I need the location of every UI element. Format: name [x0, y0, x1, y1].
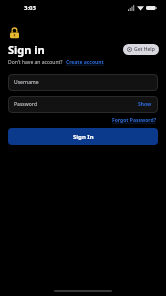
- staticText: Forgot Password?: [112, 117, 157, 124]
- staticText: Sign In: [73, 133, 94, 141]
- button[interactable]: Create account: [66, 59, 104, 66]
- button[interactable]: Show: [138, 101, 152, 108]
- staticText: Create account: [66, 59, 104, 66]
- staticText: Username: [14, 79, 39, 86]
- button[interactable]: Sign In: [8, 128, 158, 145]
- button[interactable]: Forgot Password?: [112, 117, 157, 124]
- staticText: 3:03: [24, 4, 36, 12]
- button[interactable]: Password: [8, 96, 158, 113]
- staticText: Don't have an account?: [8, 59, 63, 66]
- staticText: Show: [138, 101, 152, 108]
- staticText: Sign in: [8, 42, 45, 57]
- staticText: Password: [14, 101, 37, 108]
- button[interactable]: Username: [8, 74, 158, 91]
- button[interactable]: Get Help: [123, 44, 159, 55]
- staticText: Get Help: [134, 46, 155, 53]
